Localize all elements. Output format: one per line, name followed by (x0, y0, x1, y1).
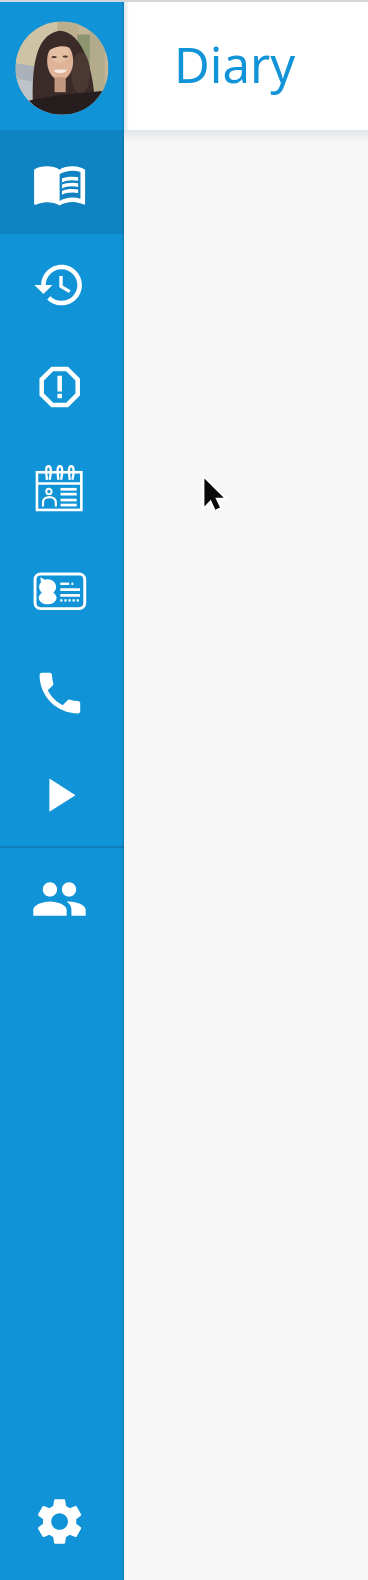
button[interactable]: Profile (0, 0, 124, 130)
button[interactable]: Calls (0, 642, 124, 744)
button[interactable]: People (0, 848, 124, 950)
button[interactable]: Contacts (0, 540, 124, 642)
button[interactable]: Diary (0, 130, 124, 234)
button[interactable]: History (0, 234, 124, 336)
button[interactable]: Settings (0, 1470, 124, 1572)
button[interactable]: Diary (124, 0, 368, 130)
button[interactable]: Alerts (0, 336, 124, 438)
button[interactable]: Play (0, 744, 124, 846)
staticText: Diary (174, 31, 296, 98)
button[interactable]: Appointments (0, 438, 124, 540)
